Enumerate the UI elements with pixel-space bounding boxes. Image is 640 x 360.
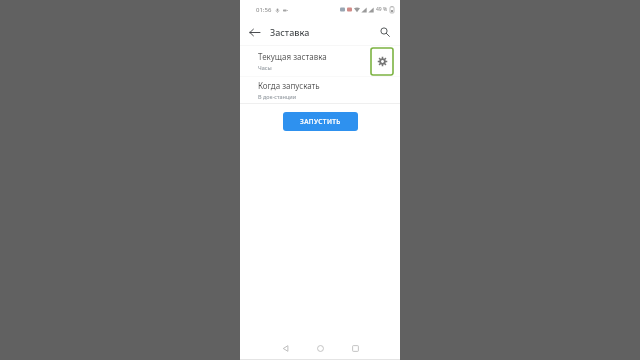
button[interactable]: Настройки заставки <box>371 48 393 75</box>
staticText: Когда запускать <box>258 80 320 91</box>
staticText: 01:56 <box>256 6 272 14</box>
button[interactable]: Поиск <box>375 22 395 42</box>
button[interactable]: Когда запускать <box>240 77 400 103</box>
button[interactable]: Текущая заставка <box>240 46 371 76</box>
button[interactable]: Назад <box>272 337 298 359</box>
staticText: Текущая заставка <box>258 51 327 62</box>
staticText: ЗАПУСТИТЬ <box>300 117 341 126</box>
button[interactable]: Главный экран <box>307 337 333 359</box>
staticText: 49 % <box>376 6 388 13</box>
staticText: В док-станции <box>258 93 297 100</box>
button[interactable]: Обзор <box>342 337 368 359</box>
staticText: Часы <box>258 64 272 71</box>
button[interactable]: ЗАПУСТИТЬ <box>283 112 358 131</box>
button[interactable]: Назад <box>244 22 264 42</box>
staticText: Заставка <box>270 26 310 38</box>
